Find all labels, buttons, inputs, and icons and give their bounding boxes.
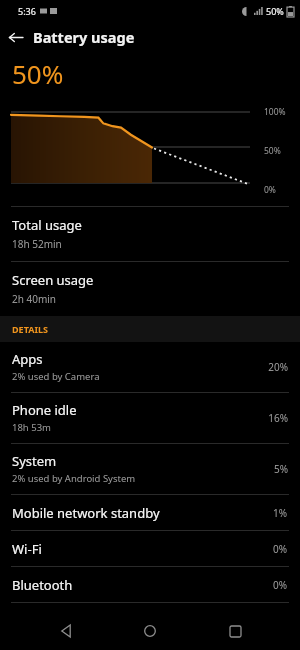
staticText: 1% (273, 506, 288, 520)
staticText: 18h 52min (12, 237, 62, 251)
staticText: 50% (266, 5, 284, 17)
staticText: System (12, 452, 57, 470)
staticText: 50% (264, 145, 281, 157)
staticText: Wi-Fi (12, 540, 273, 558)
button[interactable]: Mobile network standby (0, 495, 300, 530)
button[interactable]: Back (0, 22, 30, 52)
staticText: 50% (12, 56, 64, 91)
staticText: 2% used by Android System (12, 472, 136, 485)
staticText: DETAILS (12, 323, 48, 335)
staticText: 0% (273, 578, 288, 592)
staticText: 2% used by Camera (12, 370, 100, 383)
button[interactable]: Recent apps (216, 612, 254, 650)
staticText: 0% (264, 184, 276, 196)
staticText: 20% (268, 360, 288, 374)
button[interactable]: Back (47, 612, 85, 650)
staticText: Bluetooth (12, 576, 273, 594)
staticText: 2h 40min (12, 292, 57, 306)
button[interactable]: Apps (0, 342, 300, 392)
staticText: Apps (12, 350, 43, 368)
staticText: Mobile network standby (12, 504, 273, 522)
button[interactable]: Total usage (0, 207, 300, 261)
staticText: 100% (264, 106, 286, 118)
staticText: 5:36 (18, 5, 36, 17)
staticText: Screen usage (12, 271, 94, 289)
button[interactable]: Wi-Fi (0, 531, 300, 566)
staticText: 18h 53m (12, 421, 51, 434)
staticText: 5% (273, 462, 288, 476)
button[interactable]: System (0, 444, 300, 494)
staticText: Battery usage (33, 27, 135, 47)
staticText: 16% (268, 411, 288, 425)
staticText: Phone idle (12, 401, 77, 419)
staticText: 0% (273, 542, 288, 556)
button[interactable]: Home (131, 612, 169, 650)
staticText: Total usage (12, 216, 82, 234)
button[interactable]: Phone idle (0, 393, 300, 443)
button[interactable]: Bluetooth (0, 567, 300, 602)
button[interactable]: Screen usage (0, 262, 300, 316)
